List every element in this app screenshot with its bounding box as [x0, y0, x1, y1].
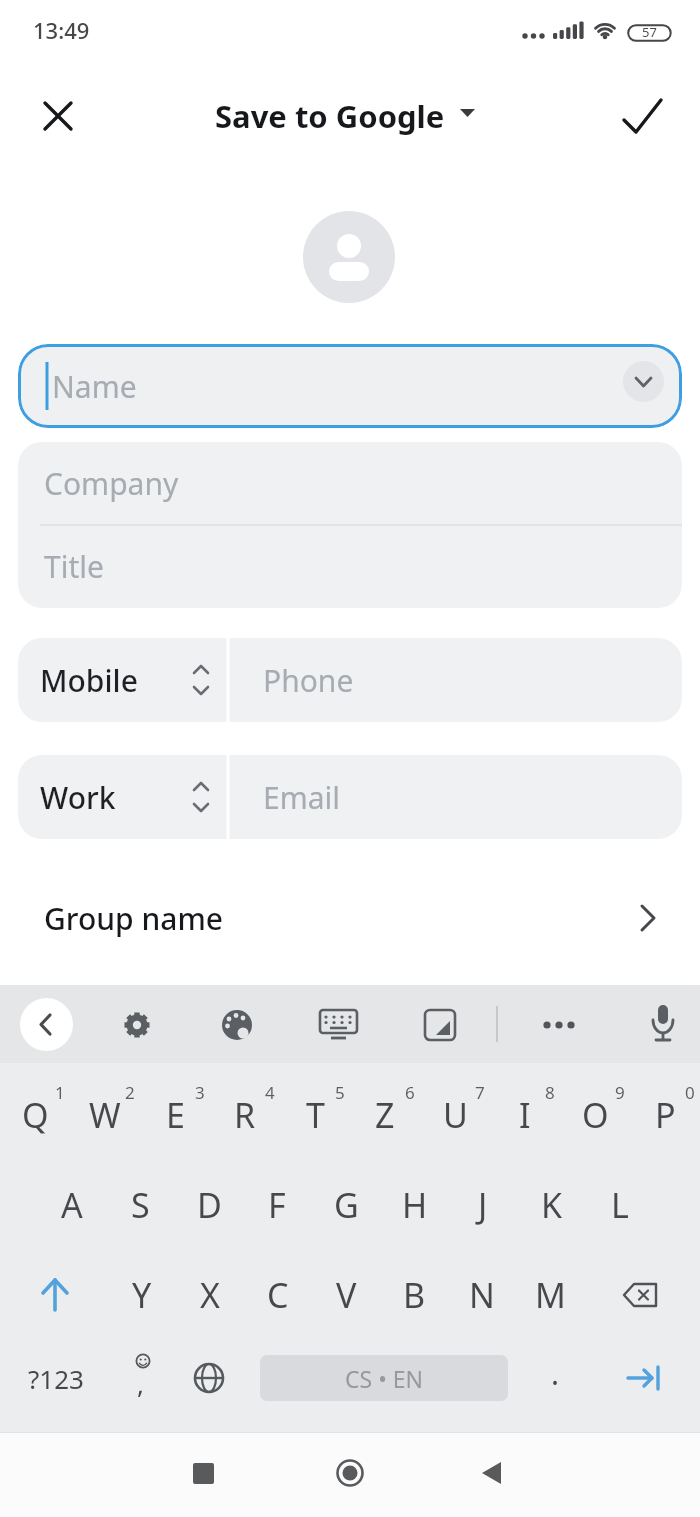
staticText: O — [582, 1092, 609, 1138]
staticText: X — [200, 1272, 220, 1318]
button[interactable] — [645, 1003, 681, 1047]
button[interactable]: P — [630, 1080, 700, 1150]
staticText: E — [166, 1092, 185, 1138]
staticText: , — [137, 1366, 144, 1401]
button[interactable]: Company — [44, 442, 444, 525]
staticText: 3 — [195, 1081, 205, 1104]
button[interactable] — [119, 1007, 155, 1043]
button[interactable]: C — [244, 1260, 312, 1330]
staticText: J — [478, 1182, 488, 1228]
button[interactable]: L — [586, 1170, 654, 1240]
button[interactable]: U — [420, 1080, 490, 1150]
button[interactable]: Save to Google — [180, 92, 480, 140]
button[interactable]: W — [70, 1080, 140, 1150]
button[interactable] — [422, 1007, 458, 1043]
button[interactable]: N — [448, 1260, 516, 1330]
button[interactable] — [540, 1007, 586, 1043]
button[interactable]: CS • EN — [260, 1355, 508, 1401]
button[interactable]: H — [381, 1170, 449, 1240]
button[interactable]: Name — [18, 344, 682, 428]
button[interactable] — [187, 1356, 231, 1400]
button[interactable] — [20, 998, 73, 1051]
staticText: 2 — [125, 1081, 135, 1104]
staticText: L — [611, 1182, 629, 1228]
button[interactable] — [120, 1348, 164, 1408]
staticText: H — [402, 1182, 428, 1228]
staticText: D — [197, 1182, 222, 1228]
staticText: 1 — [55, 1081, 65, 1104]
staticText: . — [551, 1353, 560, 1394]
staticText: 6 — [405, 1081, 415, 1104]
button[interactable] — [623, 361, 664, 402]
button[interactable] — [458, 106, 478, 120]
button[interactable] — [332, 1455, 368, 1491]
button[interactable] — [30, 1270, 80, 1320]
button[interactable] — [474, 1455, 510, 1491]
staticText: I — [519, 1092, 531, 1138]
staticText: CS • EN — [345, 1363, 424, 1394]
button[interactable]: O — [560, 1080, 630, 1150]
button[interactable]: Group name — [0, 880, 700, 956]
staticText: Work — [40, 777, 116, 818]
staticText: Z — [375, 1092, 395, 1138]
staticText: N — [469, 1272, 495, 1318]
button[interactable]: G — [312, 1170, 380, 1240]
staticText: K — [541, 1182, 563, 1228]
staticText: 5 — [335, 1081, 345, 1104]
button[interactable]: D — [175, 1170, 243, 1240]
button[interactable]: A — [38, 1170, 106, 1240]
button[interactable]: Y — [108, 1260, 176, 1330]
button[interactable]: Title — [44, 525, 444, 608]
button[interactable]: F — [243, 1170, 311, 1240]
button[interactable] — [318, 1007, 360, 1043]
staticText: P — [655, 1092, 676, 1138]
staticText: 7 — [475, 1081, 485, 1104]
button[interactable]: Mobile — [40, 638, 190, 722]
button[interactable] — [615, 1270, 667, 1320]
staticText: R — [234, 1092, 256, 1138]
button[interactable]: Q — [0, 1080, 70, 1150]
button[interactable] — [620, 1353, 670, 1403]
button[interactable]: R — [210, 1080, 280, 1150]
button[interactable] — [185, 1455, 221, 1491]
staticText: Mobile — [40, 660, 138, 701]
staticText: Title — [44, 546, 104, 587]
staticText: M — [535, 1272, 566, 1318]
button[interactable] — [42, 100, 74, 132]
staticText: Q — [22, 1092, 49, 1138]
staticText: F — [268, 1182, 286, 1228]
button[interactable]: S — [106, 1170, 174, 1240]
button[interactable]: Z — [350, 1080, 420, 1150]
button[interactable]: Email — [263, 755, 563, 839]
button[interactable]: K — [518, 1170, 586, 1240]
button[interactable]: ?123 — [18, 1348, 94, 1408]
button[interactable]: . — [535, 1343, 575, 1403]
button[interactable]: M — [516, 1260, 584, 1330]
button[interactable] — [219, 1007, 255, 1043]
button[interactable] — [620, 94, 666, 138]
button[interactable]: Work — [40, 755, 190, 839]
staticText: 57 — [642, 23, 657, 41]
staticText: W — [89, 1092, 121, 1138]
staticText: Save to Google — [215, 95, 445, 137]
button[interactable]: X — [176, 1260, 244, 1330]
button[interactable]: Phone — [263, 638, 563, 722]
staticText: T — [306, 1092, 325, 1138]
staticText: Email — [263, 777, 341, 818]
button[interactable]: B — [380, 1260, 448, 1330]
button[interactable] — [303, 211, 395, 303]
staticText: 4 — [265, 1081, 275, 1104]
staticText: 9 — [615, 1081, 625, 1104]
button[interactable]: I — [490, 1080, 560, 1150]
button[interactable]: T — [280, 1080, 350, 1150]
staticText: U — [443, 1092, 468, 1138]
staticText: Phone — [263, 660, 354, 701]
staticText: S — [131, 1182, 150, 1228]
button[interactable]: V — [312, 1260, 380, 1330]
staticText: ?123 — [28, 1361, 84, 1396]
button[interactable]: E — [140, 1080, 210, 1150]
staticText: G — [334, 1182, 359, 1228]
button[interactable]: J — [449, 1170, 517, 1240]
staticText: C — [267, 1272, 289, 1318]
staticText: 8 — [545, 1081, 555, 1104]
